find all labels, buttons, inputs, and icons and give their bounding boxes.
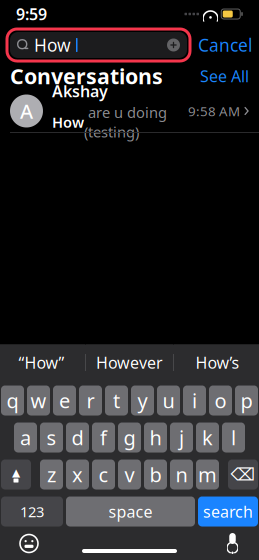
staticText: Conversations — [10, 62, 163, 90]
staticText: x — [72, 461, 83, 488]
staticText: are u doing (testing) — [84, 103, 167, 142]
button[interactable]: z — [40, 459, 63, 489]
button[interactable]: A — [0, 90, 259, 132]
staticText: space — [108, 501, 152, 522]
button[interactable]: q — [1, 385, 24, 415]
button[interactable]: v — [118, 459, 141, 489]
staticText: m — [198, 461, 217, 488]
button[interactable]: e — [53, 385, 76, 415]
staticText: p — [240, 387, 252, 414]
button[interactable]: 123 — [1, 496, 63, 526]
button[interactable]: c — [92, 459, 115, 489]
staticText: d — [71, 424, 83, 451]
staticText: search — [203, 501, 253, 522]
staticText: “How” — [18, 352, 64, 373]
staticText: g — [123, 424, 135, 451]
button[interactable]: i — [183, 385, 206, 415]
staticText: n — [175, 461, 187, 488]
staticText: y — [137, 387, 147, 414]
button[interactable]: p — [235, 385, 258, 415]
staticText: 123 — [20, 502, 44, 521]
staticText: How — [34, 33, 71, 56]
button[interactable]: h — [144, 422, 167, 452]
staticText: t — [113, 387, 120, 414]
button[interactable]: k — [196, 422, 219, 452]
button[interactable]: y — [131, 385, 154, 415]
button[interactable]: Cancel — [198, 33, 252, 56]
staticText: q — [6, 387, 18, 414]
staticText: ⌫ — [230, 465, 255, 484]
staticText: a — [20, 424, 31, 451]
staticText: See All — [200, 65, 249, 87]
button[interactable]: a — [14, 422, 37, 452]
button[interactable]: Dictation — [226, 533, 239, 553]
button[interactable]: f — [92, 422, 115, 452]
button[interactable]: How — [7, 29, 190, 61]
button[interactable]: However — [86, 344, 173, 380]
staticText: How’s — [195, 352, 239, 373]
button[interactable]: g — [118, 422, 141, 452]
staticText: 9:59 — [16, 3, 47, 25]
button[interactable]: search — [198, 496, 258, 526]
staticText: k — [202, 424, 213, 451]
button[interactable]: Shift — [1, 459, 31, 489]
button[interactable]: How’s — [174, 344, 259, 380]
button[interactable]: j — [170, 422, 193, 452]
button[interactable]: m — [196, 459, 219, 489]
staticText: i — [192, 387, 197, 414]
button[interactable]: “How” — [0, 344, 85, 380]
staticText: How — [52, 112, 84, 132]
button[interactable]: o — [209, 385, 232, 415]
staticText: u — [162, 387, 174, 414]
staticText: Akshay — [52, 80, 108, 102]
staticText: 9:58 AM — [188, 102, 240, 120]
button[interactable]: t — [105, 385, 128, 415]
staticText: v — [124, 461, 134, 488]
staticText: f — [100, 424, 107, 451]
button[interactable]: n — [170, 459, 193, 489]
button[interactable]: s — [40, 422, 63, 452]
button[interactable]: Delete — [228, 459, 258, 489]
staticText: l — [231, 424, 236, 451]
staticText: j — [179, 424, 184, 451]
staticText: h — [149, 424, 161, 451]
staticText: c — [98, 461, 108, 488]
staticText: However — [96, 352, 163, 373]
staticText: A — [20, 98, 33, 124]
button[interactable]: x — [66, 459, 89, 489]
staticText: r — [86, 387, 94, 414]
button[interactable]: u — [157, 385, 180, 415]
button[interactable]: w — [27, 385, 50, 415]
staticText: z — [47, 461, 56, 488]
button[interactable]: b — [144, 459, 167, 489]
button[interactable]: r — [79, 385, 102, 415]
staticText: s — [46, 424, 56, 451]
staticText: w — [30, 387, 46, 414]
staticText: b — [149, 461, 161, 488]
button[interactable]: Emoji — [20, 534, 38, 552]
button[interactable]: space — [66, 496, 195, 526]
staticText: e — [59, 387, 70, 414]
staticText: o — [214, 387, 226, 414]
button[interactable]: l — [222, 422, 245, 452]
button[interactable]: See All — [200, 65, 249, 87]
staticText: ▲ — [12, 466, 20, 478]
button[interactable]: d — [66, 422, 89, 452]
staticText: Cancel — [198, 33, 252, 56]
